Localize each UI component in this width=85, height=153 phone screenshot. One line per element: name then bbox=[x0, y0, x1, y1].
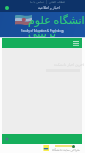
button[interactable]: Menu bbox=[73, 41, 79, 46]
button[interactable]: طراحی سایت دانشگاه bbox=[52, 148, 80, 152]
button[interactable]: Home bbox=[5, 137, 9, 141]
staticText: آخرین اخبار دانشکده bbox=[54, 62, 84, 67]
button[interactable]: صفحه اصلی | تماس با ما bbox=[30, 0, 66, 4]
button[interactable]: Certificate bbox=[41, 145, 49, 151]
staticText: دانشگاه علوم تربیتی bbox=[28, 12, 85, 37]
button[interactable]: Logo bbox=[5, 6, 9, 10]
staticText: Faculty of Education & Psychology bbox=[21, 29, 64, 33]
button[interactable]: اخبار و اطلاعیه bbox=[38, 5, 60, 10]
